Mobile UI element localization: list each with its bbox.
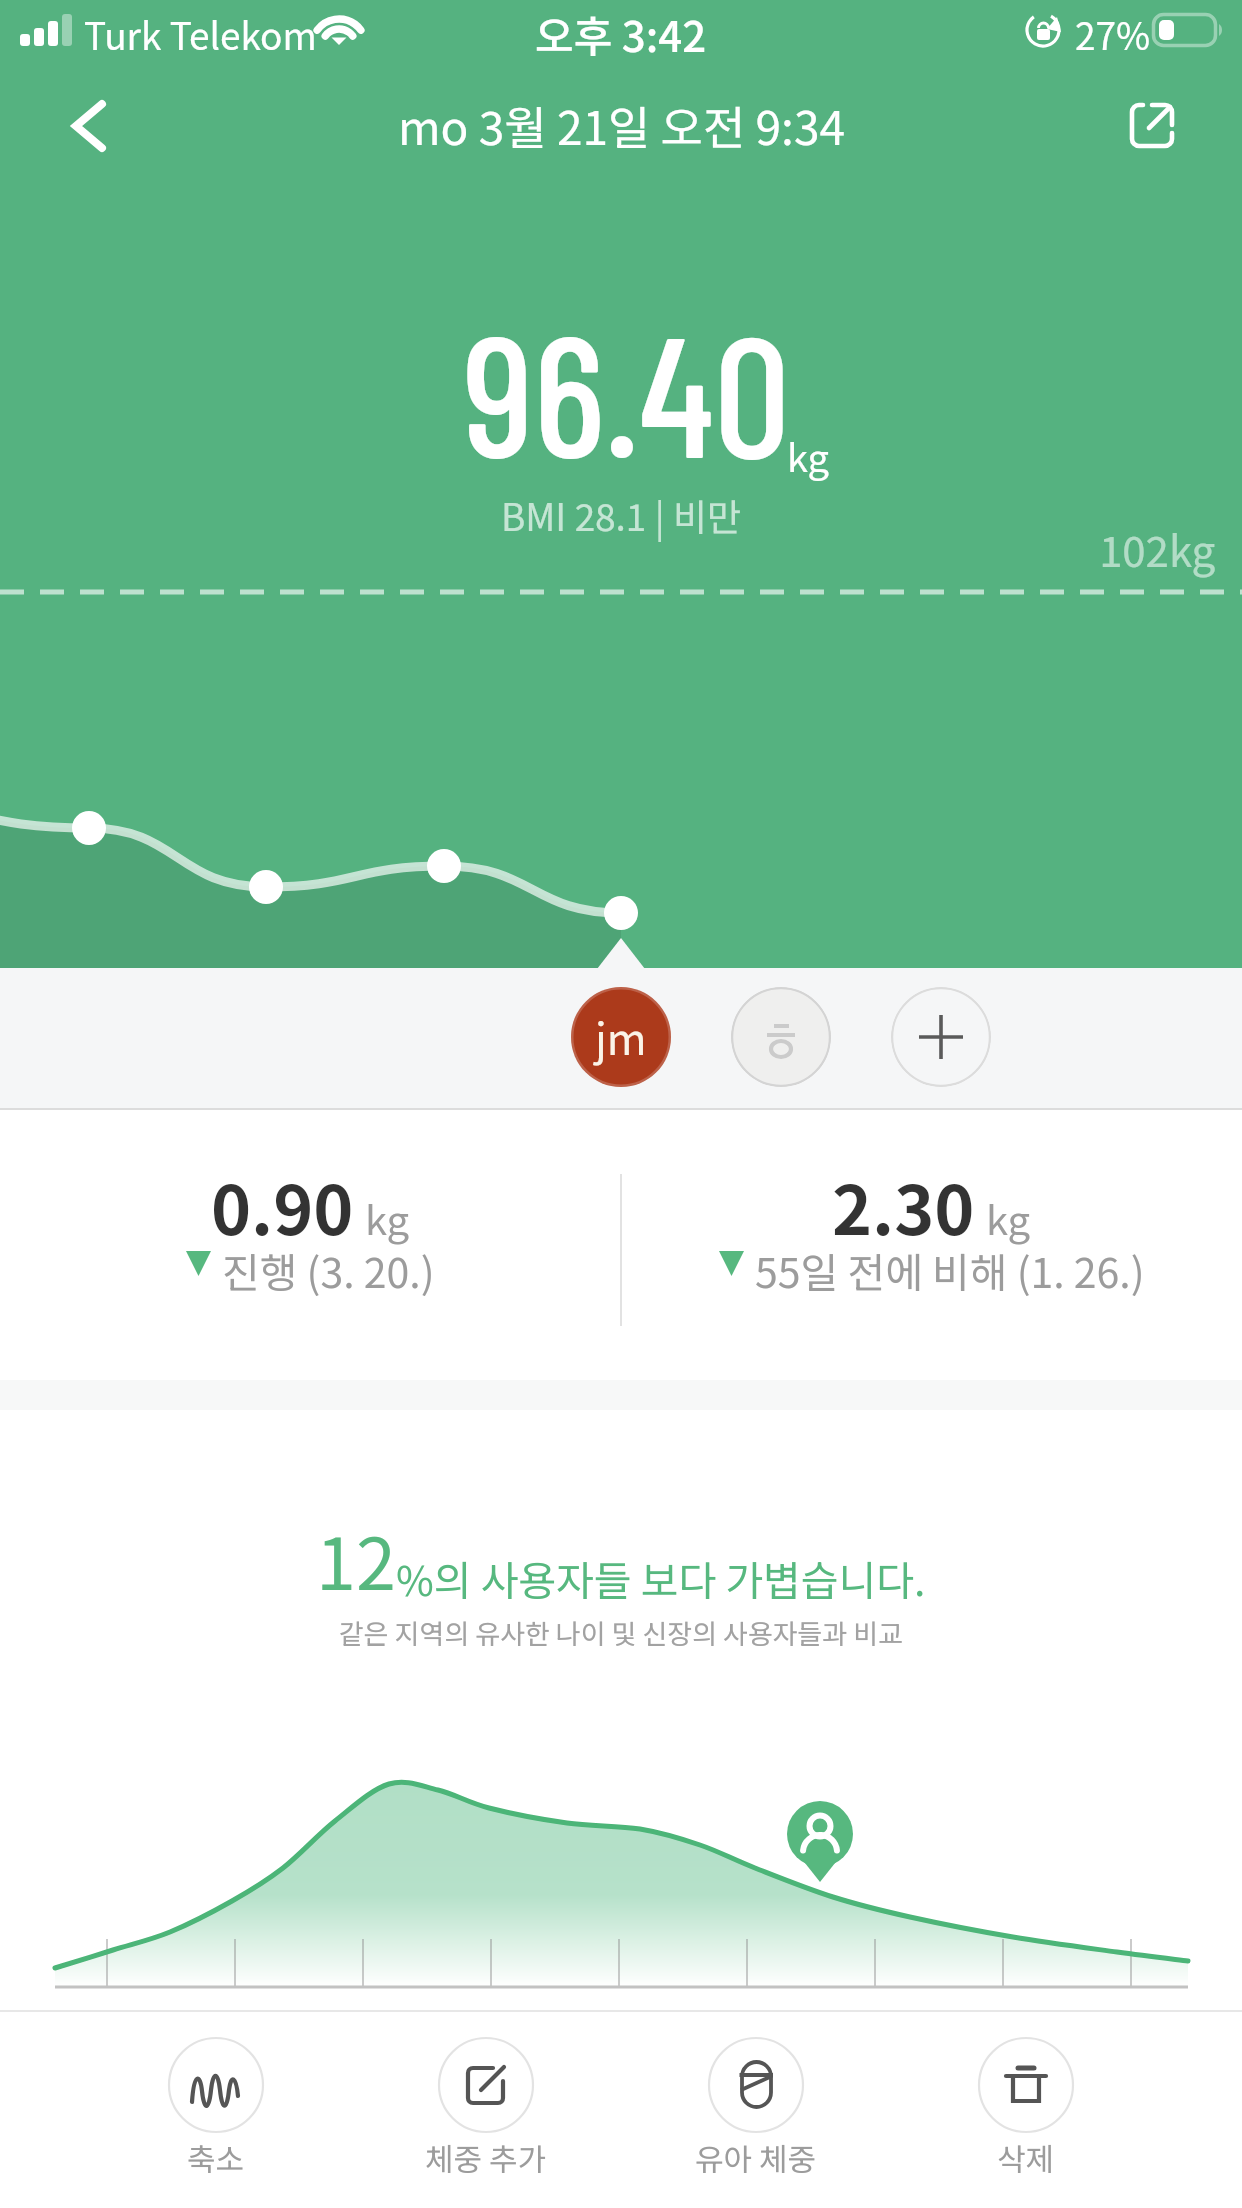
staticText: kg [787,428,829,483]
staticText: 축소 [187,2135,245,2180]
staticText: jm [595,1005,647,1067]
button[interactable]: Back [46,82,134,170]
staticText: 체중 추가 [425,2135,547,2180]
button[interactable]: 2.30 [621,1110,1241,1380]
staticText: 96.40 [463,288,790,492]
staticText: 27% [1075,7,1151,61]
button[interactable]: 삭제 [916,2037,1136,2180]
staticText: 같은 지역의 유사한 나이 및 신장의 사용자들과 비교 [339,1613,903,1652]
button[interactable]: jm [571,987,671,1087]
button[interactable]: 체중 추가 [376,2037,596,2180]
staticText: 유아 체중 [695,2135,817,2180]
button[interactable]: 0.90 [0,1110,620,1380]
staticText: 0.90 [211,1156,354,1254]
staticText: 진행 (3. 20.) [222,1240,435,1299]
staticText: 55일 전에 비해 (1. 26.) [755,1240,1145,1299]
staticText: mo 3월 21일 오전 9:34 [398,92,845,159]
button[interactable]: User profile [731,987,831,1087]
staticText: 오후 3:42 [535,3,707,64]
button[interactable]: Add weight entry [891,987,991,1087]
button[interactable]: 유아 체중 [646,2037,866,2180]
staticText: %의 사용자들 보다 가볍습니다. [396,1548,926,1607]
button[interactable]: 축소 [106,2037,326,2180]
staticText: BMI 28.1 | 비만 [501,488,742,542]
button[interactable]: Share [1118,84,1190,156]
staticText: 12 [316,1506,396,1610]
staticText: Turk Telekom [84,7,317,61]
staticText: 2.30 [832,1156,975,1254]
staticText: kg [365,1189,410,1247]
staticText: 삭제 [997,2135,1055,2180]
staticText: kg [986,1189,1031,1247]
staticText: 102kg [1099,518,1216,579]
